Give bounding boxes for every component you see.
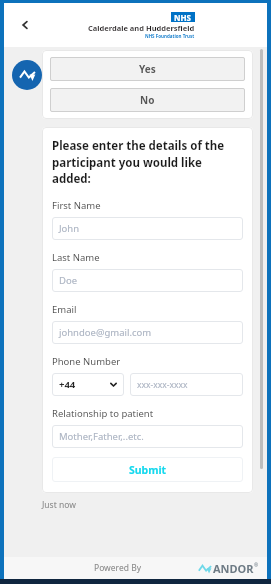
staticText: ® bbox=[254, 562, 259, 569]
staticText: Email bbox=[52, 303, 77, 316]
staticText: Please enter the details of the particip… bbox=[52, 138, 243, 186]
staticText: NHS bbox=[174, 12, 192, 22]
staticText: johndoe@gmail.com bbox=[59, 326, 152, 339]
staticText: Calderdale and Huddersfield bbox=[88, 23, 195, 33]
staticText: Powered By bbox=[94, 562, 142, 574]
button[interactable]: No bbox=[50, 88, 245, 112]
button[interactable]: Doe bbox=[52, 269, 243, 292]
button[interactable]: johndoe@gmail.com bbox=[52, 321, 243, 344]
staticText: xxx-xxx-xxxx bbox=[137, 379, 188, 391]
button[interactable]: +44 bbox=[52, 373, 124, 396]
staticText: First Name bbox=[52, 199, 101, 212]
button[interactable]: ANDOR bbox=[198, 561, 259, 576]
staticText: Just now bbox=[42, 499, 76, 511]
staticText: Phone Number bbox=[52, 355, 121, 368]
staticText: ANDOR bbox=[213, 561, 254, 576]
staticText: John bbox=[59, 222, 80, 235]
staticText: Mother,Father,..etc. bbox=[59, 430, 144, 443]
button[interactable]: Yes bbox=[50, 57, 245, 81]
staticText: Submit bbox=[129, 463, 167, 477]
button[interactable]: Submit bbox=[52, 457, 243, 482]
staticText: Yes bbox=[139, 62, 156, 76]
button[interactable]: Back bbox=[14, 14, 36, 36]
button[interactable]: Mother,Father,..etc. bbox=[52, 425, 243, 448]
button[interactable]: John bbox=[52, 217, 243, 240]
staticText: No bbox=[140, 93, 155, 107]
staticText: Last Name bbox=[52, 251, 100, 264]
staticText: NHS Foundation Trust bbox=[145, 33, 195, 39]
staticText: Doe bbox=[59, 274, 78, 287]
other: Andor assistant bbox=[12, 60, 42, 90]
staticText: Relationship to patient bbox=[52, 407, 154, 420]
staticText: +44 bbox=[59, 378, 76, 391]
button[interactable]: xxx-xxx-xxxx bbox=[130, 373, 243, 396]
